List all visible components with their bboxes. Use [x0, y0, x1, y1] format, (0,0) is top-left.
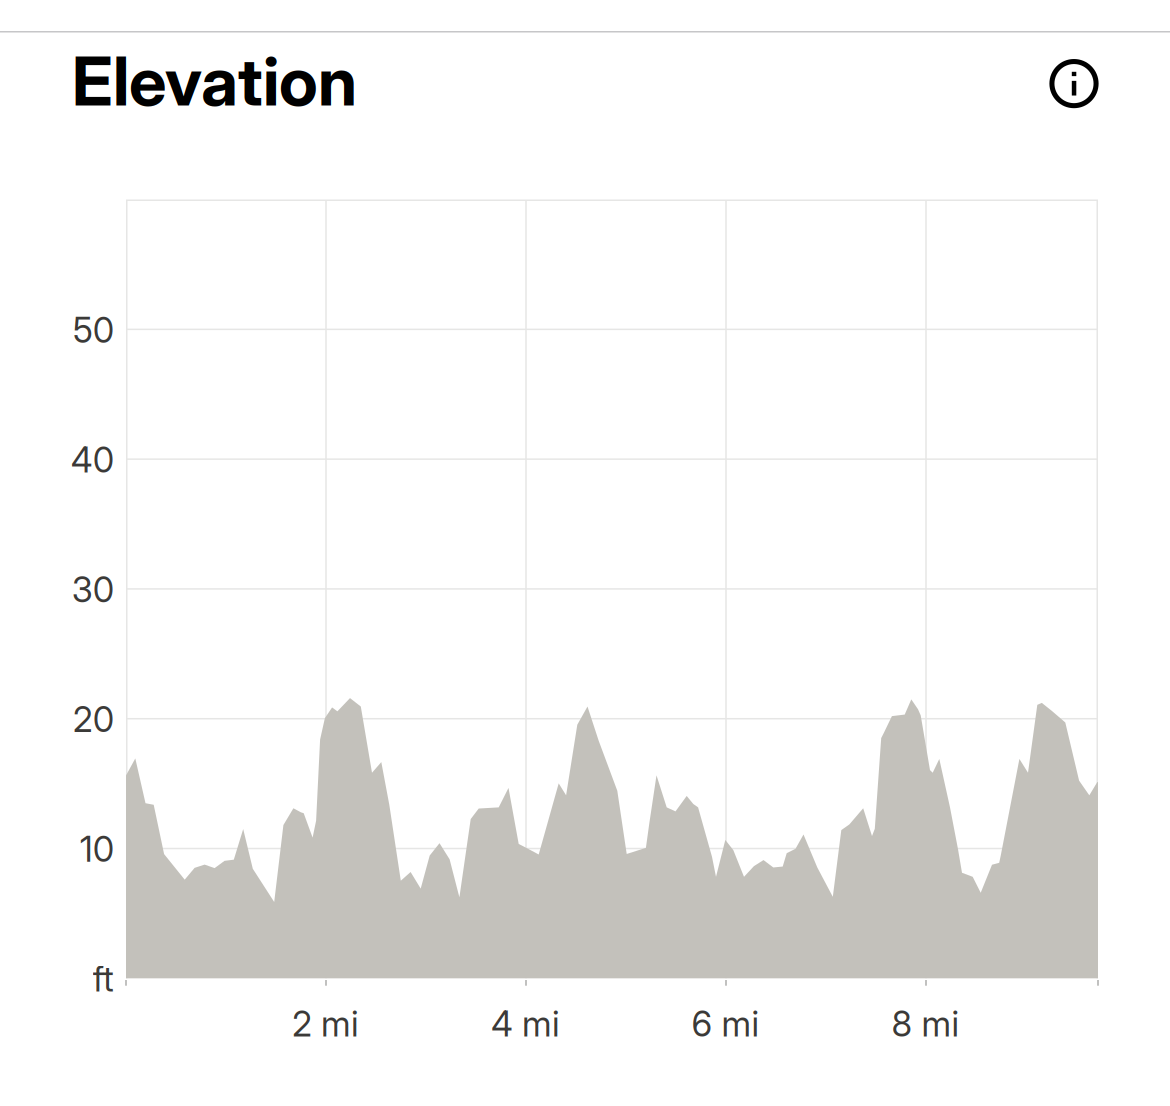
button[interactable]: About elevation: [1047, 57, 1101, 111]
staticText: 4 mi: [491, 1003, 560, 1045]
staticText: 30: [72, 569, 114, 611]
staticText: 20: [73, 698, 114, 740]
staticText: 10: [80, 828, 114, 870]
staticText: 40: [71, 439, 114, 481]
staticText: 6 mi: [691, 1003, 759, 1045]
staticText: 50: [73, 309, 114, 351]
staticText: 8 mi: [891, 1003, 959, 1045]
staticText: ft: [93, 958, 114, 1000]
staticText: 2 mi: [292, 1003, 359, 1045]
staticText: Elevation: [72, 41, 357, 122]
